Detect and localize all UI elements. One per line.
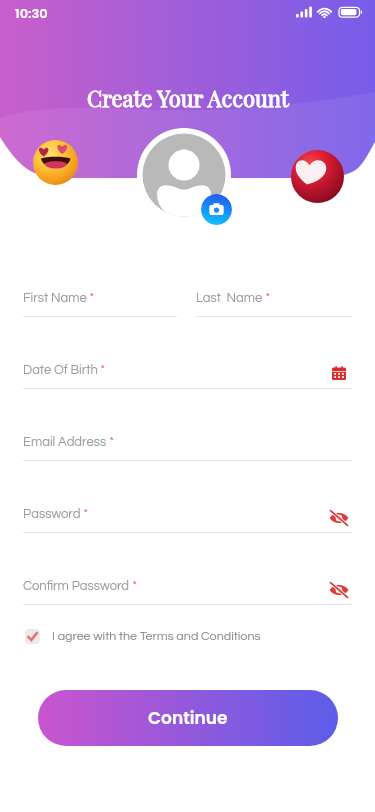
staticText: Email Address — [23, 435, 107, 448]
staticText: First Name — [23, 291, 87, 304]
staticText: Continue — [148, 706, 228, 730]
button[interactable]: Last Name — [196, 291, 352, 317]
staticText: 10:30 — [15, 4, 48, 22]
button[interactable]: Pick date — [326, 360, 352, 386]
staticText: Last Name — [196, 291, 263, 304]
staticText: * — [130, 579, 138, 591]
button[interactable]: Continue — [38, 690, 338, 746]
staticText: * — [98, 363, 106, 375]
staticText: I agree with the Terms and Conditions — [52, 630, 261, 643]
button[interactable]: First Name — [23, 291, 177, 317]
button[interactable]: Password — [23, 507, 352, 533]
button[interactable]: Confirm Password — [23, 579, 352, 605]
staticText: Confirm Password — [23, 579, 130, 592]
staticText: * — [107, 435, 115, 447]
staticText: * — [81, 507, 89, 519]
staticText: Create Your Account — [87, 83, 289, 112]
staticText: * — [263, 291, 271, 303]
staticText: Date Of Birth — [23, 363, 98, 376]
staticText: Password — [23, 507, 81, 520]
button[interactable]: Show password — [326, 505, 352, 531]
button[interactable]: Show confirm password — [326, 577, 352, 603]
staticText: * — [87, 291, 95, 303]
button[interactable]: I agree with the Terms and Conditions — [25, 629, 261, 644]
button[interactable]: Change profile photo — [201, 194, 232, 225]
button[interactable]: Date Of Birth — [23, 363, 352, 389]
button[interactable]: Email Address — [23, 435, 352, 461]
